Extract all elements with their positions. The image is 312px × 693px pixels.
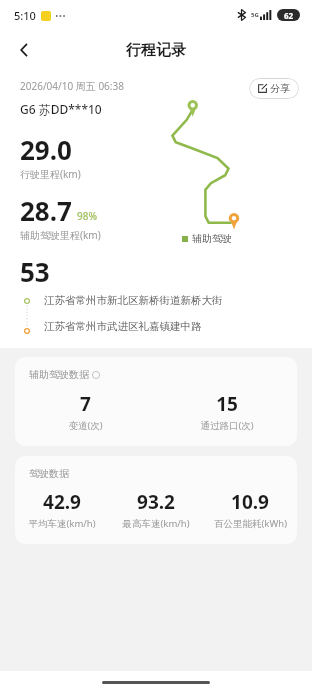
staticText: 最高车速(km/h) <box>122 517 190 530</box>
staticText: 百公里能耗(kWh) <box>214 517 287 530</box>
staticText: 42.9 <box>43 489 81 515</box>
staticText: 通过路口(次) <box>200 419 254 432</box>
staticText: 98% <box>77 209 97 223</box>
staticText: G6 苏DD***10 <box>20 101 102 117</box>
staticText: 江苏省常州市新北区新桥街道新桥大街 <box>44 294 223 307</box>
staticText: 变道(次) <box>68 419 103 432</box>
staticText: 53 <box>20 254 50 288</box>
staticText: 7 <box>80 391 91 417</box>
staticText: 平均车速(km/h) <box>28 517 96 530</box>
button[interactable]: 辅助驾驶数据 <box>15 357 297 446</box>
staticText: 2026/04/10 周五 06:38 <box>20 79 124 93</box>
staticText: 5G <box>251 11 259 19</box>
staticText: 行程记录 <box>126 41 186 60</box>
staticText: 辅助驾驶里程(km) <box>20 228 101 242</box>
staticText: 分享 <box>270 82 290 95</box>
staticText: 5:10 <box>14 8 36 23</box>
staticText: 28.7 <box>20 193 72 228</box>
staticText: 29.0 <box>20 132 72 167</box>
button[interactable]: 驾驶数据 <box>15 456 297 544</box>
staticText: 辅助驾驶 <box>192 232 232 245</box>
staticText: 江苏省常州市武进区礼嘉镇建中路 <box>44 320 202 333</box>
staticText: 10.9 <box>231 489 269 515</box>
staticText: 62 <box>284 10 294 21</box>
button[interactable]: Back <box>8 34 40 66</box>
staticText: 行驶里程(km) <box>20 167 81 181</box>
button[interactable]: 分享 <box>249 78 299 99</box>
staticText: 93.2 <box>137 489 175 515</box>
staticText: 辅助驾驶数据 <box>29 368 89 381</box>
staticText: 15 <box>216 391 238 417</box>
staticText: 驾驶数据 <box>29 467 69 480</box>
